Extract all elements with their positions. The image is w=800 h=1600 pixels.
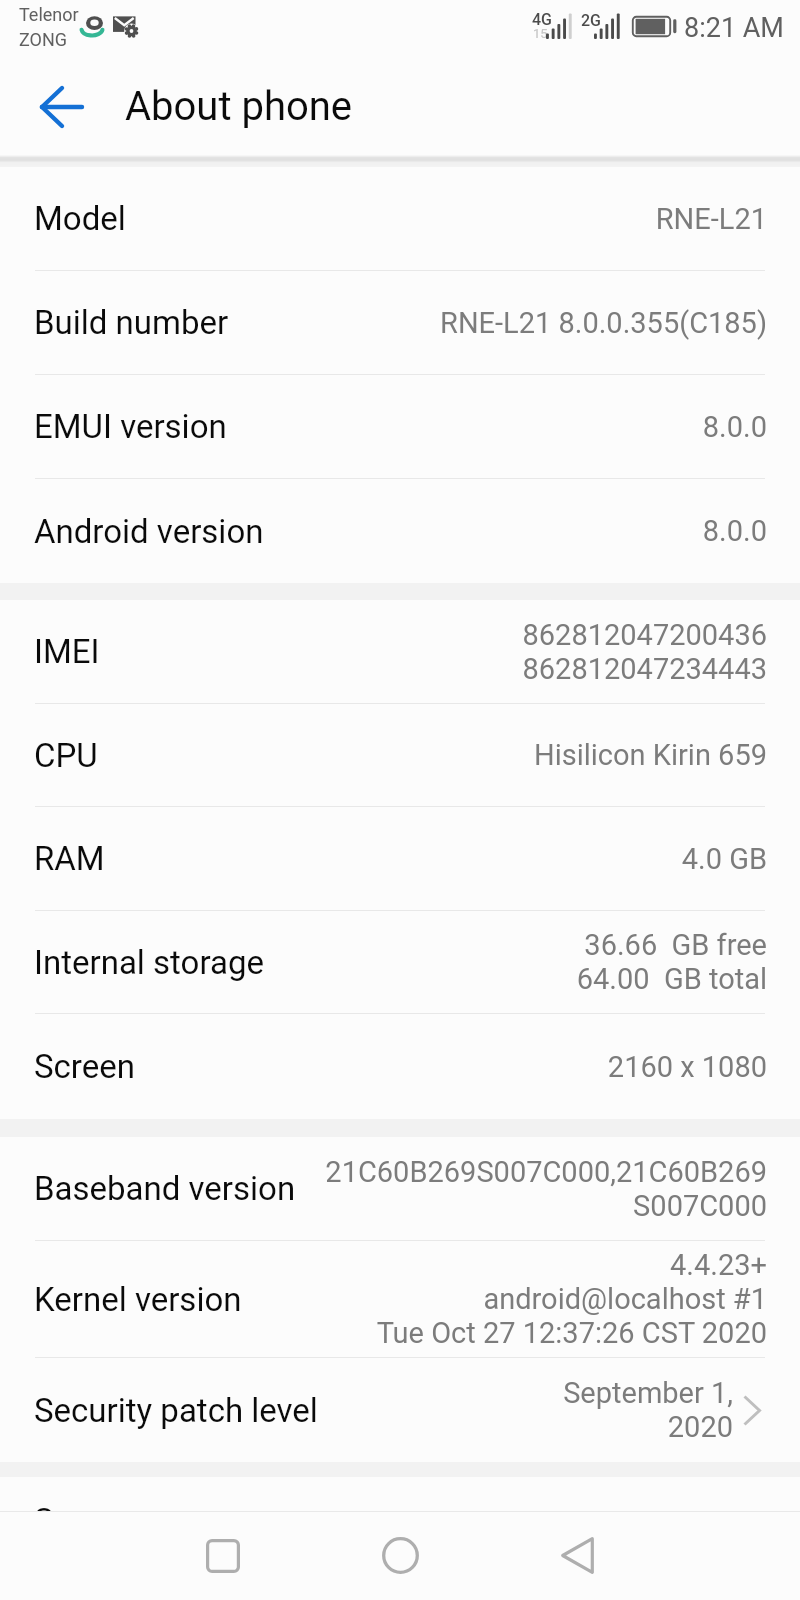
staticText: ZONG [19, 29, 68, 50]
button[interactable]: CPU [0, 704, 800, 806]
button[interactable]: Sensors [0, 1477, 800, 1563]
button[interactable]: Build number [0, 271, 800, 374]
staticText: 2G [581, 11, 601, 30]
staticText: Tue Oct 27 12:37:26 CST 2020 [376, 1316, 767, 1350]
staticText: September 1, [563, 1376, 733, 1410]
button[interactable]: RAM [0, 807, 800, 910]
staticText: 4.0 GB [681, 842, 767, 876]
staticText: Build number [34, 303, 229, 342]
staticText: 8.0.0 [702, 514, 767, 548]
button[interactable]: Security patch level [0, 1358, 800, 1462]
button[interactable]: Model [0, 167, 800, 270]
staticText: Android version [34, 512, 264, 551]
button[interactable]: IMEI [0, 600, 800, 703]
button[interactable]: Recent apps [178, 1511, 267, 1600]
staticText: Sensors [34, 1501, 154, 1540]
staticText: Model [34, 199, 126, 238]
staticText: S007C000 [633, 1189, 767, 1223]
staticText: Baseband version [34, 1169, 296, 1208]
button[interactable]: Kernel version [0, 1241, 800, 1357]
staticText: Security patch level [34, 1391, 318, 1430]
button[interactable]: Screen [0, 1014, 800, 1119]
button[interactable]: Home [356, 1511, 445, 1600]
staticText: 2160 x 1080 [607, 1050, 767, 1084]
staticText: CPU [34, 736, 98, 775]
staticText: About phone [125, 83, 353, 130]
staticText: 2020 [667, 1410, 733, 1444]
staticText: 8.0.0 [702, 410, 767, 444]
staticText: RNE-L21 [655, 202, 767, 236]
button[interactable]: Back [16, 61, 108, 153]
staticText: RAM [34, 839, 105, 878]
button[interactable]: Android version [0, 479, 800, 583]
staticText: android@localhost #1 [483, 1282, 767, 1316]
staticText: 4.4.23+ [670, 1248, 767, 1282]
staticText: 862812047234443 [522, 652, 767, 686]
staticText: IMEI [34, 632, 100, 671]
staticText: 8:21 AM [684, 12, 784, 44]
staticText: Screen [34, 1047, 135, 1086]
button[interactable]: Baseband version [0, 1137, 800, 1240]
staticText: EMUI version [34, 407, 227, 446]
staticText: 4G [532, 10, 552, 29]
button[interactable]: Back [533, 1511, 622, 1600]
staticText: 862812047200436 [522, 618, 767, 652]
staticText: RNE-L21 8.0.0.355(C185) [440, 306, 767, 340]
staticText: Internal storage [34, 943, 264, 982]
staticText: Hisilicon Kirin 659 [533, 738, 767, 772]
button[interactable]: EMUI version [0, 375, 800, 478]
button[interactable]: Internal storage [0, 911, 800, 1013]
staticText: 21C60B269S007C000,21C60B269 [325, 1155, 767, 1189]
staticText: 36.66 GB free [584, 928, 767, 962]
staticText: Kernel version [34, 1280, 242, 1319]
staticText: 64.00 GB total [576, 962, 767, 996]
staticText: 15 [533, 26, 548, 41]
staticText: Telenor [19, 4, 79, 25]
